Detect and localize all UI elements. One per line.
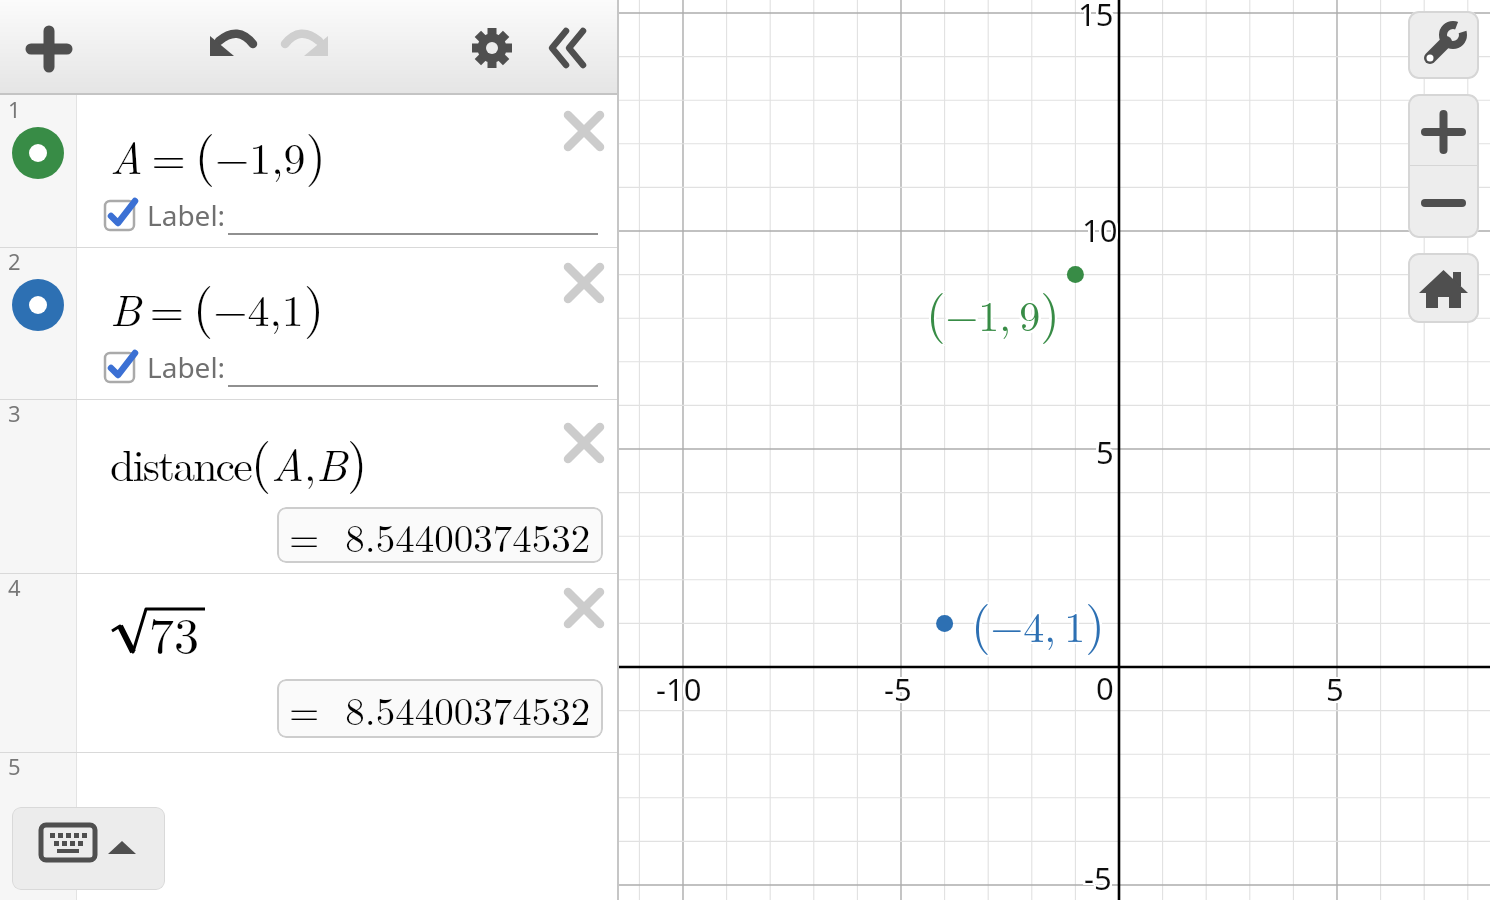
staticText: A = (−1,9): [110, 114, 327, 189]
button[interactable]: [105, 353, 135, 383]
staticText: 10: [1080, 211, 1116, 253]
staticText: 0: [1098, 667, 1116, 709]
staticText: 5: [1098, 433, 1116, 475]
staticText: 15: [1076, 0, 1112, 33]
staticText: 5: [1096, 429, 1114, 471]
staticText: (−4, 1): [969, 587, 1103, 657]
button[interactable]: [467, 22, 517, 74]
staticText: = 8.54400374532: [289, 508, 591, 563]
staticText: 15: [1078, 0, 1114, 35]
staticText: -5: [884, 668, 912, 710]
staticText: 5: [1094, 433, 1112, 475]
staticText: -5: [1084, 859, 1112, 900]
staticText: 5: [1324, 670, 1342, 712]
staticText: 0: [1094, 665, 1112, 707]
staticText: -5: [1082, 857, 1110, 899]
staticText: Label:: [147, 348, 226, 386]
staticText: 15: [1080, 0, 1116, 35]
button[interactable]: [11, 126, 65, 180]
button[interactable]: [566, 425, 602, 461]
staticText: Label:: [147, 196, 226, 234]
staticText: 15: [1078, 0, 1114, 33]
staticText: -5: [884, 666, 912, 708]
staticText: 0: [1096, 669, 1114, 711]
staticText: (−1, 9): [924, 272, 1058, 342]
staticText: 0: [1094, 669, 1112, 711]
staticText: 2: [8, 246, 21, 276]
staticText: 5: [1096, 433, 1114, 475]
staticText: 0: [1096, 667, 1114, 709]
staticText: -10: [654, 668, 700, 710]
staticText: 0: [1094, 667, 1112, 709]
staticText: 5: [8, 751, 21, 781]
staticText: 10: [1084, 211, 1120, 253]
button[interactable]: [77, 96, 617, 247]
staticText: -5: [1086, 859, 1114, 900]
staticText: -5: [886, 668, 914, 710]
staticText: (−4, 1): [973, 587, 1107, 657]
staticText: 10: [1084, 209, 1120, 251]
button[interactable]: [566, 113, 602, 149]
button[interactable]: [11, 278, 65, 332]
staticText: 5: [1328, 670, 1346, 712]
staticText: 0: [1096, 665, 1114, 707]
staticText: 5: [1324, 668, 1342, 710]
staticText: 10: [1080, 207, 1116, 249]
staticText: 5: [1328, 666, 1346, 708]
staticText: 15: [1076, 0, 1112, 37]
staticText: -5: [882, 670, 910, 712]
button[interactable]: [12, 807, 165, 890]
staticText: 15: [1078, 0, 1114, 37]
staticText: -5: [1084, 857, 1112, 899]
staticText: -5: [1082, 855, 1110, 897]
staticText: (−4, 1): [969, 583, 1103, 653]
staticText: (−1, 9): [924, 276, 1058, 346]
staticText: (−1, 9): [926, 272, 1060, 342]
staticText: 0: [1098, 665, 1116, 707]
staticText: -10: [658, 670, 704, 712]
staticText: 0: [1098, 669, 1116, 711]
staticText: 4: [8, 572, 21, 602]
staticText: (−4, 1): [971, 587, 1105, 657]
button[interactable]: [77, 248, 617, 399]
staticText: -10: [654, 666, 700, 708]
button[interactable]: [77, 400, 617, 573]
staticText: -10: [656, 668, 702, 710]
button[interactable]: [281, 30, 333, 62]
staticText: 10: [1082, 209, 1118, 251]
staticText: 10: [1082, 211, 1118, 253]
staticText: 15: [1080, 0, 1116, 37]
staticText: -5: [886, 666, 914, 708]
staticText: (−4, 1): [969, 585, 1103, 655]
button[interactable]: [24, 24, 74, 74]
button[interactable]: [1408, 166, 1479, 238]
staticText: 5: [1324, 666, 1342, 708]
button[interactable]: [105, 201, 135, 231]
button[interactable]: [1408, 253, 1479, 323]
staticText: 5: [1326, 670, 1344, 712]
button[interactable]: [77, 574, 617, 752]
staticText: -5: [1082, 859, 1110, 900]
staticText: -10: [656, 670, 702, 712]
staticText: -5: [886, 670, 914, 712]
staticText: -5: [1086, 855, 1114, 897]
staticText: 5: [1098, 429, 1116, 471]
button[interactable]: [205, 30, 257, 62]
staticText: -5: [882, 668, 910, 710]
staticText: 1: [8, 94, 21, 124]
button[interactable]: [545, 24, 591, 72]
staticText: 10: [1082, 207, 1118, 249]
button[interactable]: [1408, 11, 1479, 79]
staticText: (−4, 1): [971, 585, 1105, 655]
staticText: -10: [656, 666, 702, 708]
button[interactable]: [566, 590, 602, 626]
staticText: -5: [882, 666, 910, 708]
staticText: (−1, 9): [928, 274, 1062, 344]
staticText: = 8.54400374532: [289, 681, 591, 736]
button[interactable]: [1408, 94, 1479, 166]
staticText: 10: [1080, 209, 1116, 251]
staticText: (−1, 9): [928, 276, 1062, 346]
staticText: (−1, 9): [926, 276, 1060, 346]
button[interactable]: [566, 265, 602, 301]
staticText: 15: [1080, 0, 1116, 33]
